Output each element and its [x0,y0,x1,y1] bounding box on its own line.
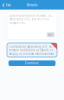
staticText: tempor incididunt ut labore et dolore ma [9,48,55,52]
staticText: tempor inc [9,21,24,25]
staticText: adipiscing elit, sed do eius [9,17,48,21]
button[interactable]: Back [0,2,12,8]
button[interactable]: Continue [8,60,55,66]
staticText: Lorem ipsum dolor sit amet, consectetur [9,14,55,17]
staticText: aliqua, ut enim ad minim veniam quis [9,52,55,56]
staticText: Edit [48,33,53,37]
staticText: Consectetur adipiscing elit, sed do eius… [9,45,55,48]
staticText: Back [5,3,10,7]
staticText: Continue [25,61,39,65]
staticText: Details [27,3,37,7]
button[interactable]: Edit [47,32,55,37]
